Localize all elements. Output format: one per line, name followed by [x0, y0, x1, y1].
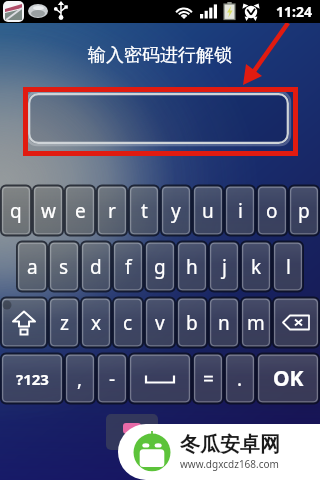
- staticText: m: [247, 310, 265, 336]
- staticText: k: [251, 254, 262, 280]
- staticText: j: [222, 254, 227, 280]
- staticText: n: [218, 310, 230, 336]
- button[interactable]: i: [224, 185, 256, 236]
- button[interactable]: [106, 414, 158, 450]
- button[interactable]: l: [272, 241, 304, 292]
- staticText: 冬瓜安卓网: [180, 432, 280, 457]
- staticText: h: [186, 254, 198, 280]
- staticText: u: [202, 198, 214, 224]
- staticText: l: [286, 254, 291, 280]
- staticText: y: [171, 198, 181, 224]
- button[interactable]: ?123: [0, 353, 64, 404]
- button[interactable]: =: [192, 353, 224, 404]
- staticText: d: [90, 254, 102, 280]
- staticText: OK: [273, 364, 304, 393]
- staticText: f: [125, 254, 132, 280]
- button[interactable]: j: [208, 241, 240, 292]
- button[interactable]: y: [160, 185, 192, 236]
- staticText: g: [154, 254, 166, 280]
- other: Status icons: [174, 0, 266, 23]
- button[interactable]: [28, 93, 289, 144]
- button[interactable]: q: [0, 185, 32, 236]
- staticText: 11:24: [276, 2, 312, 21]
- staticText: t: [141, 198, 148, 224]
- staticText: ?123: [16, 369, 49, 389]
- staticText: v: [155, 310, 165, 336]
- staticText: w: [41, 198, 56, 224]
- button[interactable]: r: [96, 185, 128, 236]
- staticText: e: [75, 198, 86, 224]
- button[interactable]: t: [128, 185, 160, 236]
- button[interactable]: Shift: [0, 297, 48, 348]
- staticText: ,: [77, 366, 83, 392]
- button[interactable]: e: [64, 185, 96, 236]
- staticText: a: [27, 254, 38, 280]
- staticText: c: [123, 310, 133, 336]
- staticText: p: [298, 198, 310, 224]
- staticText: i: [238, 198, 243, 224]
- staticText: o: [266, 198, 278, 224]
- button[interactable]: n: [208, 297, 240, 348]
- button[interactable]: u: [192, 185, 224, 236]
- button[interactable]: c: [112, 297, 144, 348]
- button[interactable]: d: [80, 241, 112, 292]
- button[interactable]: v: [144, 297, 176, 348]
- button[interactable]: h: [176, 241, 208, 292]
- button[interactable]: OK: [256, 353, 320, 404]
- staticText: r: [108, 198, 116, 224]
- button[interactable]: s: [48, 241, 80, 292]
- staticText: www.dgxcdz168.com: [180, 457, 279, 471]
- button[interactable]: ,: [64, 353, 96, 404]
- button[interactable]: m: [240, 297, 272, 348]
- staticText: 输入密码进行解锁: [0, 44, 320, 67]
- staticText: z: [60, 310, 69, 336]
- staticText: -: [109, 366, 116, 392]
- button[interactable]: o: [256, 185, 288, 236]
- staticText: .: [237, 366, 243, 392]
- button[interactable]: Space: [128, 353, 192, 404]
- button[interactable]: b: [176, 297, 208, 348]
- staticText: s: [59, 254, 69, 280]
- button[interactable]: w: [32, 185, 64, 236]
- button[interactable]: .: [224, 353, 256, 404]
- button[interactable]: k: [240, 241, 272, 292]
- button[interactable]: Backspace: [272, 297, 320, 348]
- button[interactable]: x: [80, 297, 112, 348]
- button[interactable]: f: [112, 241, 144, 292]
- button[interactable]: g: [144, 241, 176, 292]
- button[interactable]: p: [288, 185, 320, 236]
- button[interactable]: z: [48, 297, 80, 348]
- button[interactable]: -: [96, 353, 128, 404]
- button[interactable]: a: [16, 241, 48, 292]
- staticText: q: [10, 198, 22, 224]
- staticText: =: [203, 366, 214, 392]
- staticText: b: [186, 310, 198, 336]
- staticText: x: [91, 310, 102, 336]
